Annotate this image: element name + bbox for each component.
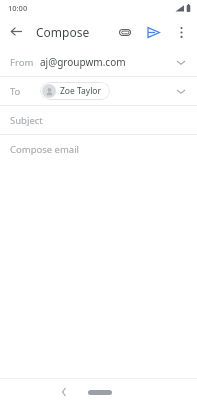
button[interactable]: More options — [167, 18, 195, 46]
staticText: Subject — [10, 114, 43, 127]
button[interactable]: Expand recipients — [171, 81, 191, 101]
staticText: 10:00 — [8, 3, 28, 13]
staticText: From — [10, 56, 34, 69]
staticText: Zoe Taylor — [60, 85, 102, 97]
button[interactable]: From — [0, 48, 197, 76]
button[interactable]: Send — [139, 18, 167, 46]
button[interactable]: Attach file — [111, 18, 139, 46]
button[interactable]: Expand from — [171, 52, 191, 72]
staticText: aj@groupwm.com — [40, 55, 126, 69]
staticText: Compose — [36, 24, 90, 40]
button[interactable]: To — [0, 77, 197, 105]
staticText: Compose email — [10, 143, 80, 156]
button[interactable]: Zoe Taylor — [40, 82, 110, 100]
staticText: To — [10, 85, 21, 98]
button[interactable]: Back — [56, 384, 72, 400]
button[interactable]: Home — [88, 390, 112, 395]
button[interactable]: Compose email — [0, 135, 197, 163]
button[interactable]: Subject — [0, 106, 197, 134]
button[interactable]: Back — [0, 15, 33, 48]
